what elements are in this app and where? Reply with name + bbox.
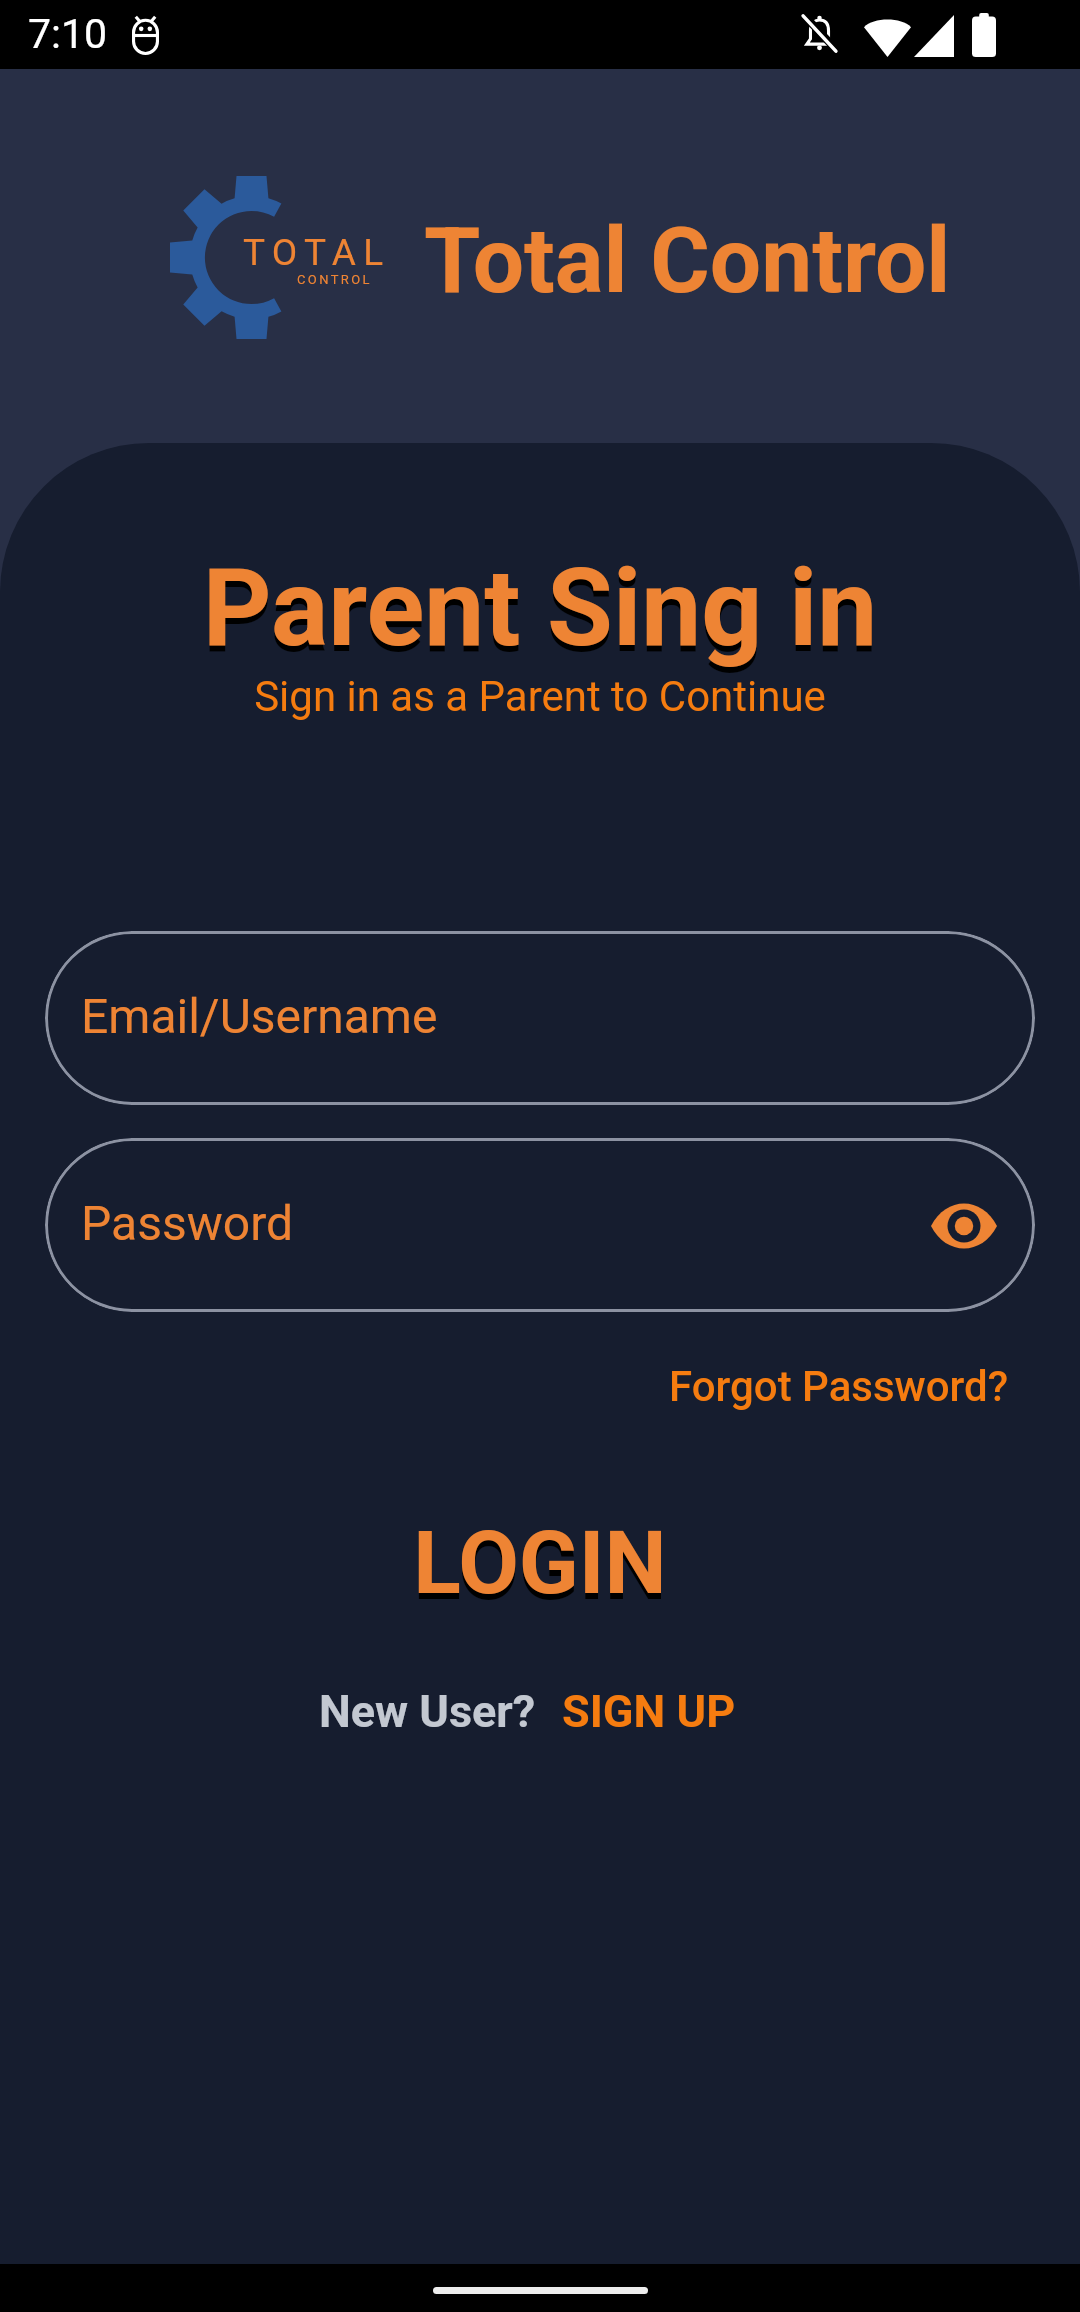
button[interactable]: Show password	[918, 1180, 1010, 1272]
staticText: LOGIN	[0, 1517, 1080, 1620]
staticText: Total Control	[424, 208, 951, 315]
staticText: Email/Username	[81, 988, 438, 1044]
staticText: Parent Sing in	[0, 546, 1080, 671]
staticText: 7:10	[28, 10, 108, 58]
staticText: Sign in as a Parent to Continue	[0, 672, 1080, 721]
staticText: Parent Sing in	[0, 552, 1080, 677]
button[interactable]: Forgot Password?	[649, 1362, 1080, 1411]
staticText: Forgot Password?	[669, 1362, 1009, 1411]
button[interactable]: SIGN UP	[562, 1685, 736, 1738]
staticText: CONTROL	[297, 272, 373, 287]
button[interactable]: Password	[45, 1138, 1035, 1312]
staticText: Password	[81, 1195, 294, 1251]
button[interactable]: LOGIN	[0, 1511, 1080, 1614]
staticText: SIGN UP	[562, 1685, 736, 1738]
staticText: New User?	[319, 1685, 536, 1738]
button[interactable]: Email/Username	[45, 931, 1035, 1105]
staticText: TOTAL	[243, 231, 391, 274]
staticText: LOGIN	[0, 1511, 1080, 1614]
